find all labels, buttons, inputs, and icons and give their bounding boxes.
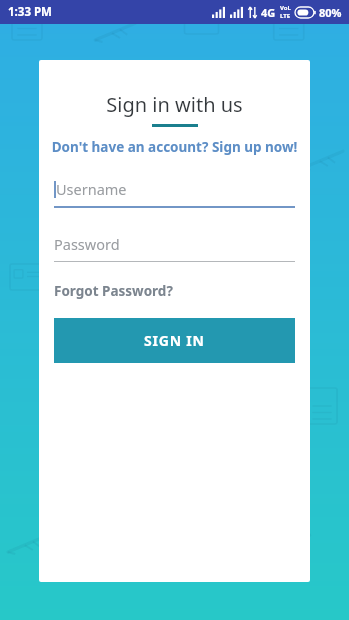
button[interactable]: SIGN IN	[54, 318, 295, 363]
staticText: Don't have an account? Sign up now!	[39, 138, 310, 156]
button[interactable]: Password	[54, 234, 295, 262]
staticText: 80%	[319, 5, 342, 20]
staticText: SIGN IN	[144, 331, 205, 350]
button[interactable]: Username	[54, 179, 295, 208]
staticText: LTE	[280, 12, 291, 20]
button[interactable]: Don't have an account? Sign up now!	[39, 136, 310, 158]
staticText: 4G	[261, 5, 276, 20]
staticText: Password	[54, 234, 120, 254]
button[interactable]: Forgot Password?	[54, 280, 173, 302]
staticText: 1:33 PM	[8, 4, 52, 20]
staticText: Username	[56, 179, 127, 199]
staticText: Sign in with us	[39, 91, 310, 118]
staticText: VoL	[280, 4, 291, 12]
staticText: Forgot Password?	[54, 282, 173, 300]
